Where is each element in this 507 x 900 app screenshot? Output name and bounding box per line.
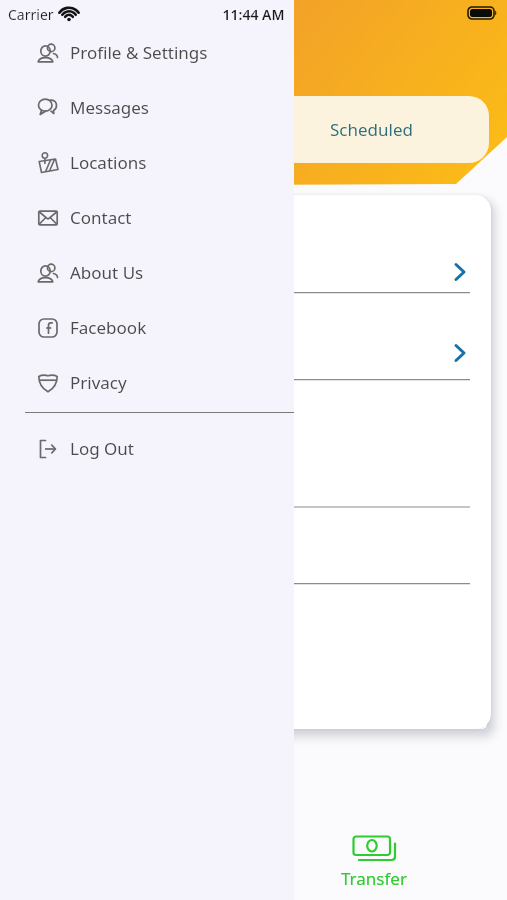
- button[interactable]: Log Out: [0, 421, 294, 476]
- button[interactable]: Messages: [0, 80, 294, 135]
- button[interactable]: [17, 96, 253, 163]
- button[interactable]: Transfer: [340, 835, 408, 897]
- staticText: Log Out: [70, 437, 134, 460]
- staticText: 11:44 AM: [0, 5, 507, 24]
- button[interactable]: Privacy: [0, 355, 294, 410]
- staticText: Scheduled: [330, 118, 413, 141]
- button[interactable]: Profile & Settings: [0, 25, 294, 80]
- staticText: Messages: [70, 96, 150, 119]
- staticText: Privacy: [70, 371, 127, 394]
- staticText: Profile & Settings: [70, 41, 208, 64]
- button[interactable]: Facebook: [0, 300, 294, 355]
- staticText: Locations: [70, 151, 147, 174]
- staticText: Facebook: [70, 316, 147, 339]
- button[interactable]: About Us: [0, 245, 294, 300]
- button[interactable]: Locations: [0, 135, 294, 190]
- staticText: About Us: [70, 261, 144, 284]
- button[interactable]: Contact: [0, 190, 294, 245]
- staticText: Contact: [70, 206, 132, 229]
- button[interactable]: Scheduled: [253, 96, 489, 163]
- staticText: Carrier: [8, 5, 54, 24]
- button[interactable]: [294, 293, 490, 379]
- button[interactable]: [294, 196, 490, 292]
- staticText: Transfer: [341, 867, 407, 890]
